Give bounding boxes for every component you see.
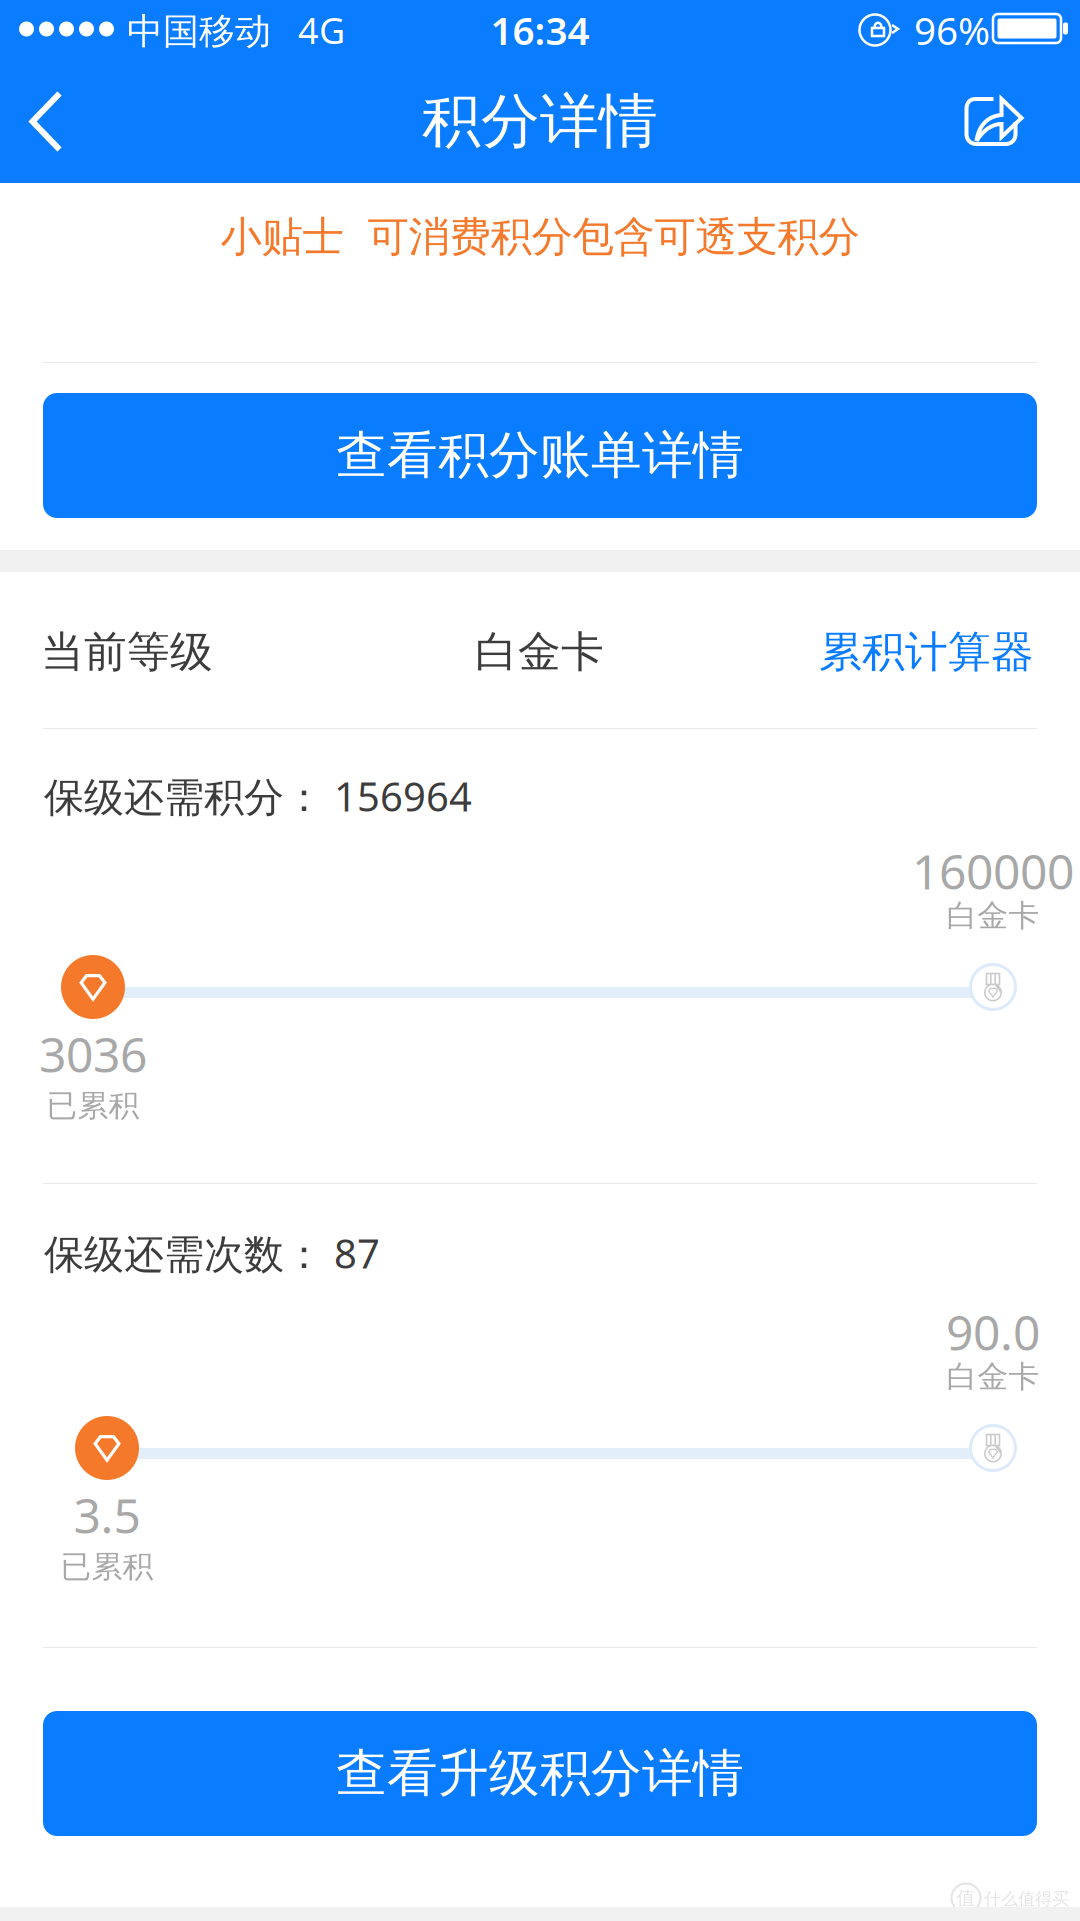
staticText: 90.0	[946, 1300, 1040, 1364]
staticText: 中国移动 4G	[127, 6, 345, 54]
staticText: 3.5	[73, 1483, 140, 1547]
staticText: 白金卡	[946, 1358, 1039, 1396]
staticText: 值	[956, 1886, 975, 1909]
button[interactable]: 查看积分账单详情	[43, 393, 1037, 518]
staticText: 96%	[914, 4, 990, 56]
staticText: 已累积	[60, 1548, 153, 1586]
staticText: 什么值得买	[984, 1888, 1069, 1910]
button[interactable]: 查看升级积分详情	[43, 1711, 1037, 1836]
button[interactable]: Share	[934, 60, 1054, 183]
staticText: 当前等级	[41, 626, 213, 678]
staticText: 查看积分账单详情	[336, 424, 744, 487]
button[interactable]: Back	[0, 60, 101, 183]
staticText: 白金卡	[946, 897, 1039, 935]
button[interactable]: 累积计算器	[734, 608, 1034, 696]
staticText: 积分详情	[422, 85, 658, 158]
staticText: 白金卡	[475, 626, 604, 678]
staticText: 16:34	[490, 4, 589, 56]
staticText: 保级还需积分： 156964	[44, 769, 472, 822]
staticText: 3036	[39, 1022, 147, 1086]
staticText: 160000	[912, 839, 1074, 903]
staticText: 查看升级积分详情	[336, 1742, 744, 1805]
staticText: 累积计算器	[819, 626, 1034, 678]
staticText: 小贴士 可消费积分包含可透支积分	[220, 212, 859, 262]
staticText: 保级还需次数： 87	[44, 1226, 380, 1279]
staticText: 已累积	[46, 1087, 139, 1125]
